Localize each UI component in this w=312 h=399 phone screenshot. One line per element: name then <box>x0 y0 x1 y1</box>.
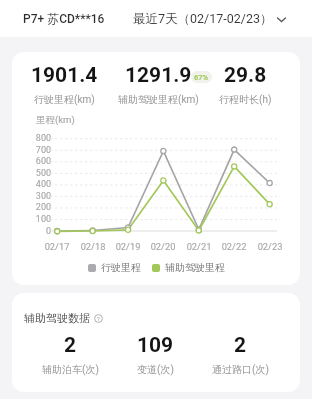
button[interactable]: 最近7天（02/17-02/23） <box>133 11 286 27</box>
staticText: 行驶里程 <box>101 261 141 274</box>
staticText: ? <box>97 315 100 322</box>
staticText: 67% <box>194 73 209 82</box>
staticText: 02/22 <box>217 241 251 252</box>
staticText: 通过路口(次) <box>212 363 269 376</box>
staticText: 辅助驾驶数据 <box>24 311 90 325</box>
staticText: 变道(次) <box>137 363 174 376</box>
staticText: 1291.9 <box>125 63 192 88</box>
staticText: 1901.4 <box>31 63 98 88</box>
staticText: 02/18 <box>76 241 110 252</box>
staticText: 最近7天（02/17-02/23） <box>133 11 273 27</box>
staticText: 02/21 <box>182 241 216 252</box>
staticText: 109 <box>137 333 174 358</box>
staticText: 辅助驾驶里程 <box>165 261 225 274</box>
staticText: 800 <box>25 133 51 144</box>
staticText: 02/23 <box>253 241 287 252</box>
staticText: 02/19 <box>111 241 145 252</box>
staticText: 0 <box>25 226 51 237</box>
staticText: 辅助泊车(次) <box>42 363 99 376</box>
staticText: 300 <box>25 191 51 202</box>
staticText: 行驶里程(km) <box>34 93 95 106</box>
staticText: 600 <box>25 156 51 167</box>
staticText: 500 <box>25 168 51 179</box>
staticText: 700 <box>25 145 51 156</box>
staticText: 02/20 <box>146 241 180 252</box>
staticText: 29.8 <box>224 63 267 88</box>
staticText: 2 <box>234 333 247 358</box>
staticText: 行程时长(h) <box>219 93 272 106</box>
staticText: 100 <box>25 214 51 225</box>
button[interactable]: 辅助驾驶数据 <box>24 311 103 325</box>
staticText: 里程(km) <box>36 114 75 126</box>
button[interactable]: P7+ 苏CD***16 <box>23 11 105 26</box>
staticText: 辅助驾驶里程(km) <box>118 93 199 106</box>
staticText: 200 <box>25 202 51 213</box>
staticText: 02/17 <box>40 241 74 252</box>
staticText: 2 <box>64 333 77 358</box>
staticText: P7+ 苏CD***16 <box>23 11 105 26</box>
staticText: 400 <box>25 179 51 190</box>
